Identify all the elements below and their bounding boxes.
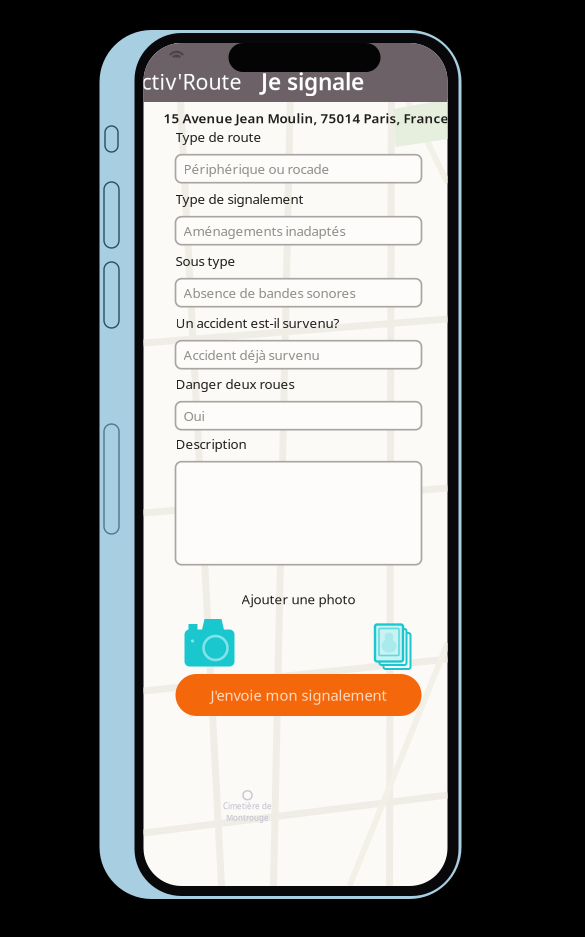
button[interactable]: Absence de bandes sonores [175, 279, 421, 307]
staticText: Description [175, 435, 246, 453]
staticText: Un accident est-il survenu? [175, 314, 339, 332]
staticText: Accident déjà survenu [183, 346, 319, 364]
button[interactable]: Choisir dans la photothèque [368, 618, 409, 667]
staticText: Absence de bandes sonores [183, 284, 355, 302]
staticText: Activ'Route [127, 67, 241, 96]
staticText: Montrouge [226, 812, 269, 823]
button[interactable] [175, 462, 421, 565]
staticText: 15 Avenue Jean Moulin, 75014 Paris, Fran… [163, 109, 448, 127]
staticText: J'envoie mon signalement [210, 685, 386, 705]
staticText: Sous type [175, 252, 235, 270]
button[interactable]: J'envoie mon signalement [175, 674, 421, 716]
button[interactable]: Accident déjà survenu [175, 341, 421, 369]
staticText: Périphérique ou rocade [183, 160, 329, 178]
staticText: Aménagements inadaptés [183, 222, 345, 240]
staticText: Type de signalement [175, 190, 303, 208]
staticText: Cimetière de [223, 801, 272, 811]
button[interactable]: Oui [175, 402, 421, 430]
button[interactable]: Activ'Route [143, 58, 257, 87]
button[interactable]: Aménagements inadaptés [175, 217, 421, 245]
button[interactable]: Prendre une photo [183, 619, 235, 667]
staticText: Ajouter une photo [241, 590, 355, 608]
staticText: Danger deux roues [175, 375, 294, 393]
staticText: Type de route [175, 128, 261, 146]
staticText: Oui [183, 407, 204, 425]
button[interactable]: Périphérique ou rocade [175, 155, 421, 183]
staticText: Je signale [261, 66, 364, 96]
